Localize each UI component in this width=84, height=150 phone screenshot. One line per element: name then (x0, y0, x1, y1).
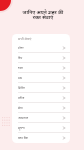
staticText: सभी सेवाएं (18, 36, 32, 41)
button[interactable]: कैंप (12, 53, 70, 63)
button[interactable]: डोनर (12, 43, 70, 53)
staticText: सूचना (18, 126, 62, 130)
button[interactable]: रक्त (12, 63, 70, 73)
staticText: कैंप (18, 56, 62, 60)
staticText: प्रश्न (18, 76, 62, 80)
staticText: शिविर (18, 86, 62, 90)
button[interactable]: अस्पताल (12, 113, 70, 123)
staticText: सेवा (18, 106, 62, 110)
staticText: मरीज (18, 96, 62, 100)
staticText: रक्त (18, 66, 62, 70)
staticText: जानिए अपने शहर की रक्त सेवाएं (13, 9, 73, 21)
staticText: डोनर (18, 46, 62, 50)
button[interactable]: मरीज (12, 93, 70, 103)
button[interactable]: सूचना (12, 123, 70, 133)
staticText: ब्लड बैंक (18, 136, 62, 140)
button[interactable]: प्रश्न (12, 73, 70, 83)
staticText: अस्पताल (18, 116, 62, 120)
button[interactable]: ब्लड बैंक (12, 133, 70, 143)
button[interactable]: सेवा (12, 103, 70, 113)
button[interactable]: शिविर (12, 83, 70, 93)
